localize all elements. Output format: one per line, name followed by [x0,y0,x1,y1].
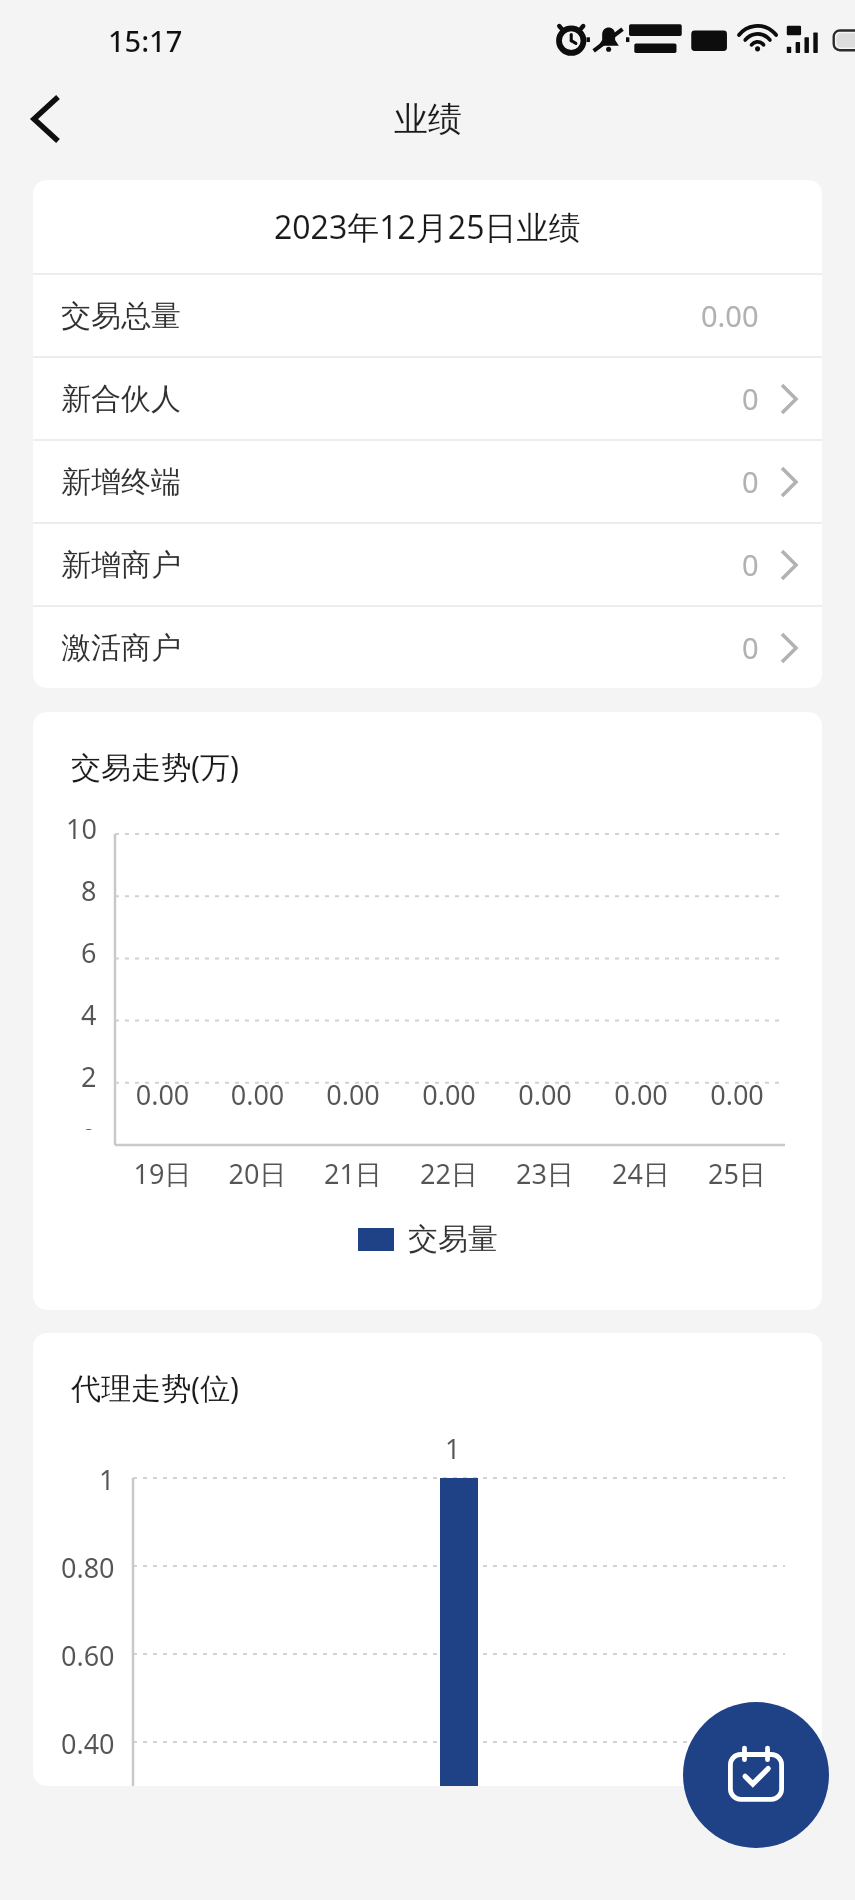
staticText: 0 [742,462,759,501]
staticText: 0.00 [305,1076,401,1113]
staticText: 22日 [401,1155,497,1192]
staticText: 0.00 [497,1076,593,1113]
staticText: 15:17 [108,21,183,60]
staticText: 交易走势(万) [71,746,239,787]
staticText: 0 [742,545,759,584]
staticText: 0.00 [593,1076,689,1113]
staticText: 2 [81,1058,97,1095]
staticText: 0 [742,379,759,418]
button[interactable]: 新增商户 [33,524,822,605]
staticText: 交易总量 [61,297,181,335]
staticText: 新增终端 [61,463,181,501]
button[interactable]: 交易总量 [33,275,822,356]
button[interactable]: Select date [683,1702,829,1848]
staticText: 8 [81,872,97,909]
staticText: 24日 [593,1155,689,1192]
staticText: 19日 [115,1155,210,1192]
staticText: 新增商户 [61,546,181,584]
staticText: 4 [81,996,97,1033]
button[interactable]: 激活商户 [33,607,822,688]
staticText: 0.00 [689,1076,785,1113]
staticText: 0.60 [61,1637,115,1674]
staticText: 20日 [210,1155,305,1192]
button[interactable]: Back [0,80,92,158]
staticText: 0.80 [61,1549,115,1586]
staticText: 21日 [305,1155,401,1192]
staticText: 代理走势(位) [71,1367,239,1408]
staticText: 0.00 [115,1076,210,1113]
staticText: 1 [99,1461,115,1498]
staticText: 23日 [497,1155,593,1192]
button[interactable]: 新合伙人 [33,358,822,439]
staticText: 交易量 [408,1220,498,1258]
staticText: 业绩 [394,98,462,141]
staticText: 0 [81,1120,97,1130]
staticText: 2023年12月25日业绩 [274,205,581,249]
staticText: 激活商户 [61,629,181,667]
staticText: 10 [66,810,97,847]
staticText: 新合伙人 [61,380,181,418]
staticText: 0.00 [210,1076,305,1113]
button[interactable]: 新增终端 [33,441,822,522]
staticText: 1 [445,1430,461,1467]
staticText: 6 [81,934,97,971]
staticText: 0.00 [701,296,759,335]
staticText: 0.40 [61,1725,115,1762]
staticText: 25日 [689,1155,785,1192]
staticText: 0.00 [401,1076,497,1113]
staticText: 0 [742,628,759,667]
